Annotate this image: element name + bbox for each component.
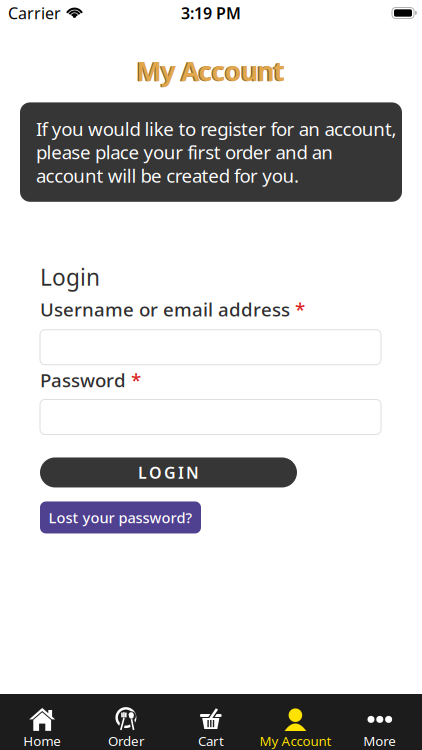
staticText: My Account (259, 732, 331, 750)
staticText: 3:19 PM (181, 2, 241, 24)
staticText: Cart (198, 732, 224, 750)
staticText: account will be created for you. (36, 163, 299, 188)
staticText: * (131, 368, 141, 392)
staticText: Carrier (8, 2, 61, 24)
staticText: Password (40, 368, 126, 392)
staticText: Home (23, 732, 61, 750)
staticText: My Account (135, 53, 284, 89)
staticText: * (295, 297, 305, 322)
button[interactable]: More (338, 694, 422, 750)
button[interactable]: Lost your password? (40, 501, 201, 533)
staticText: Order (108, 732, 145, 750)
button[interactable]: Order (84, 694, 169, 750)
staticText: Lost your password? (48, 508, 192, 527)
staticText: More (363, 732, 396, 750)
staticText: L O G I N (138, 462, 199, 483)
button[interactable]: Home (0, 694, 84, 750)
button[interactable]: My Account (253, 694, 338, 750)
button[interactable]: Username or email address (40, 330, 381, 365)
staticText: Login (40, 262, 100, 292)
staticText: If you would like to register for an acc… (36, 116, 396, 141)
button[interactable]: Cart (169, 694, 253, 750)
staticText: please place your first order and an (36, 140, 333, 164)
button[interactable]: L O G I N (40, 457, 297, 487)
staticText: Username or email address (40, 297, 290, 322)
staticText: My Account (137, 53, 285, 88)
